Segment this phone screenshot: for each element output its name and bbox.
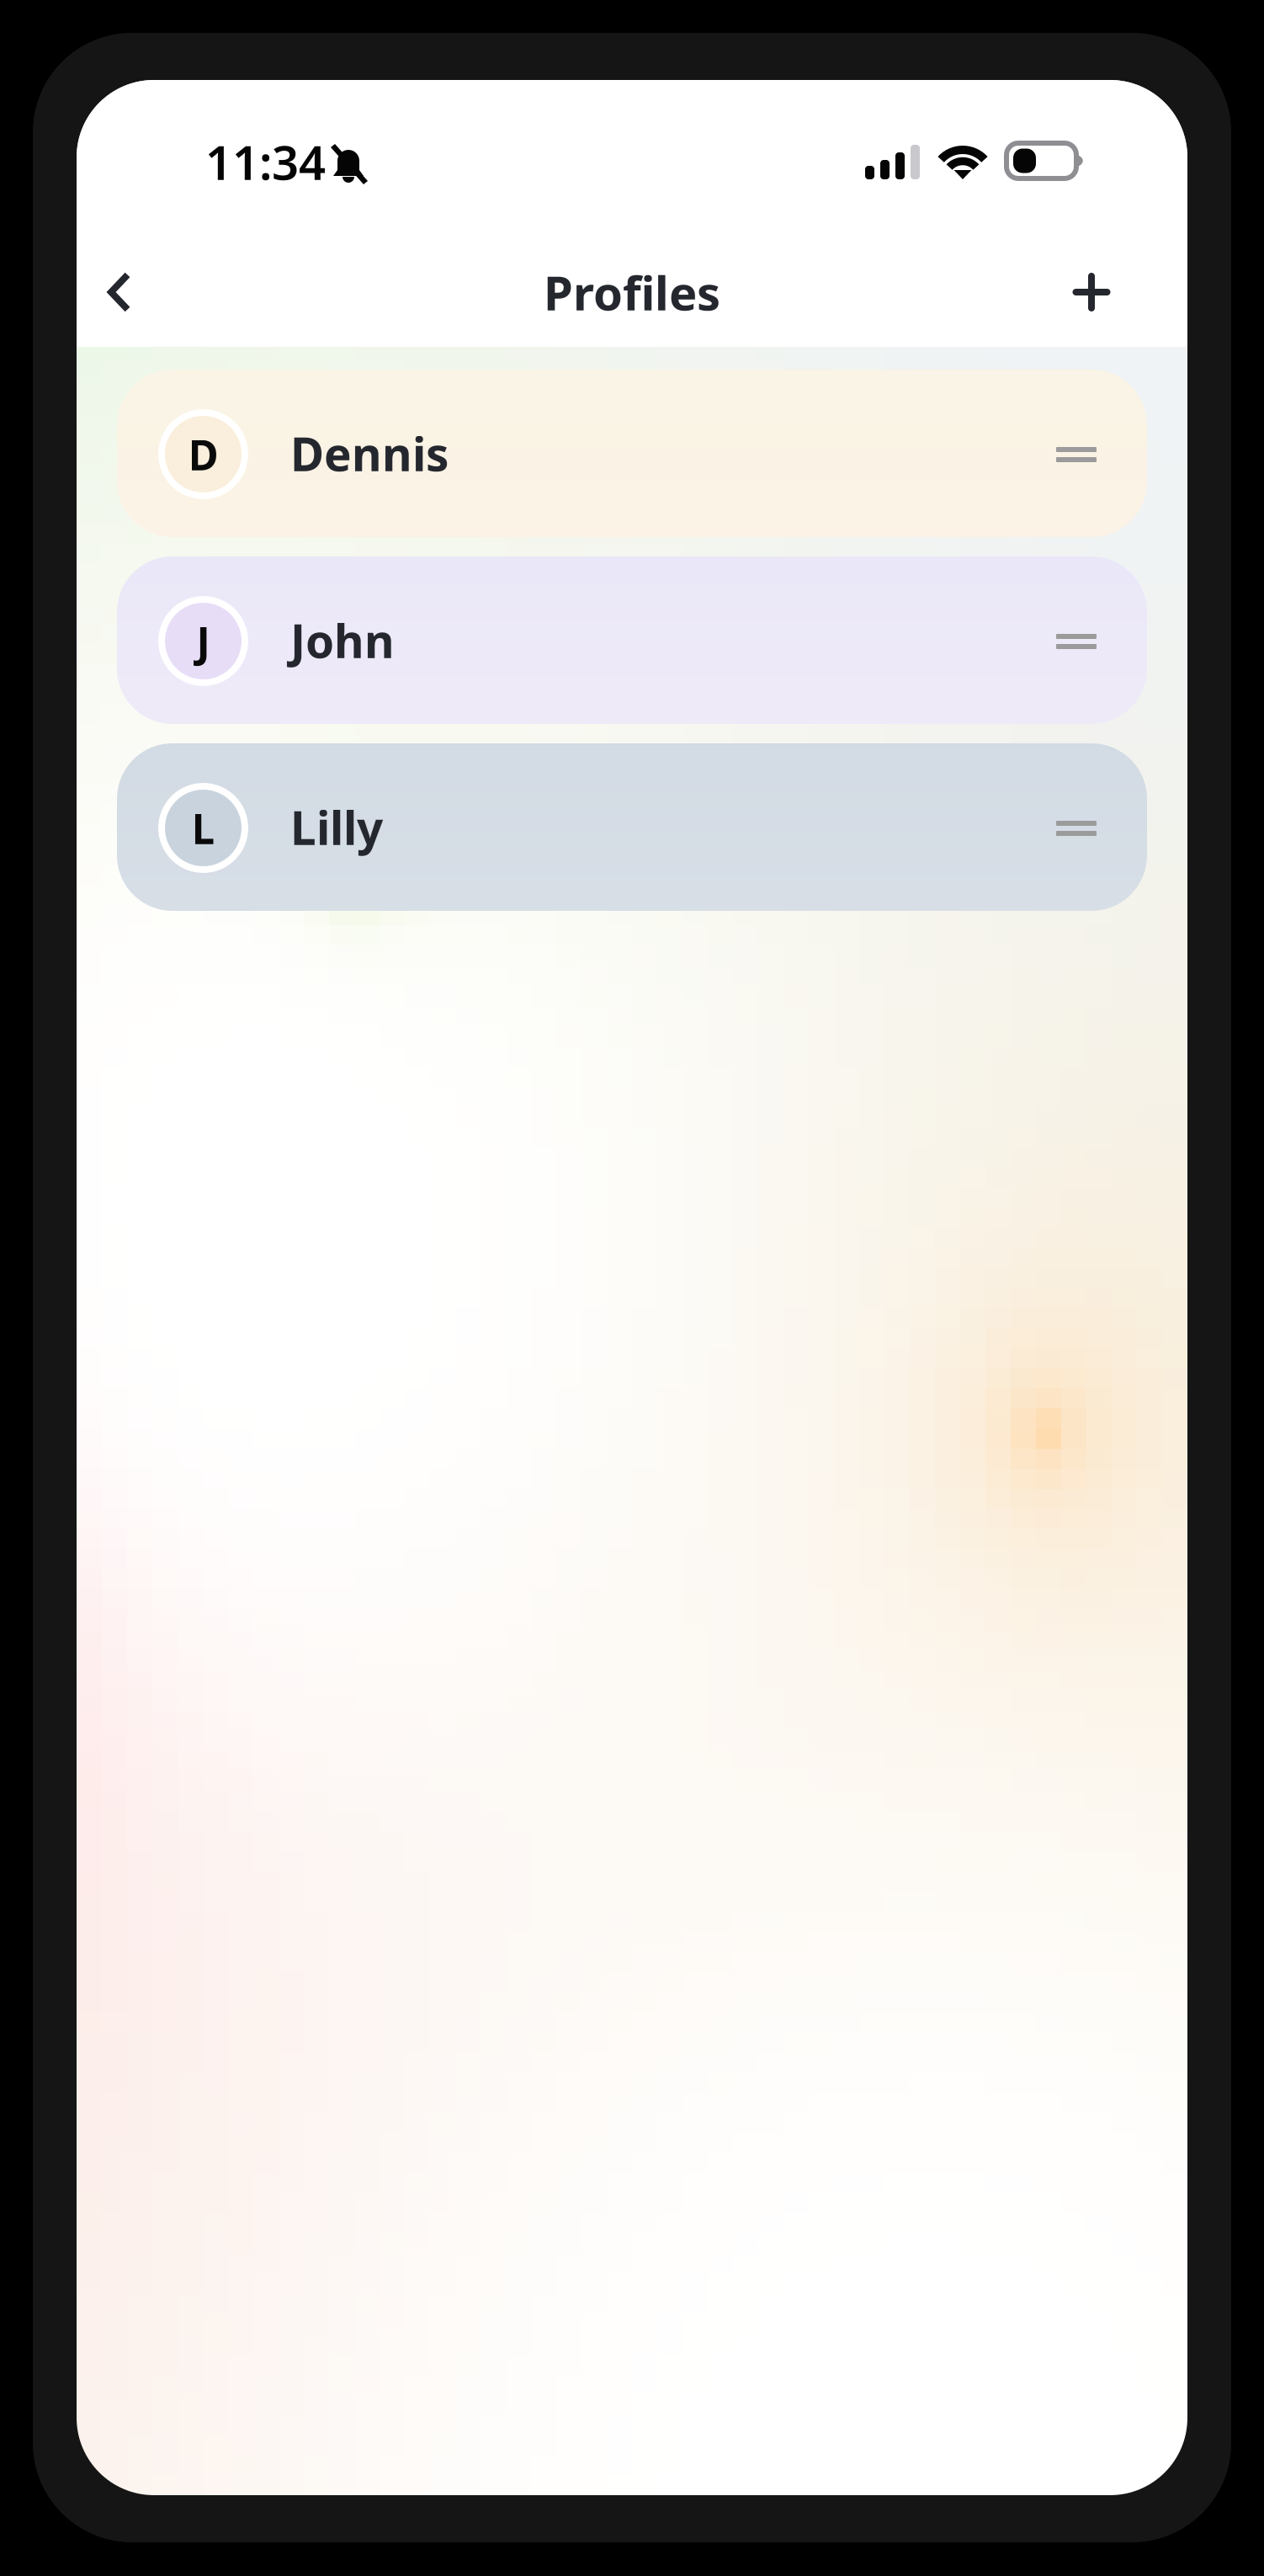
button[interactable]: D [117, 370, 1147, 537]
staticText: Lilly [290, 797, 383, 858]
staticText: Profiles [544, 261, 720, 323]
staticText: L [191, 800, 215, 855]
staticText: 11:34 [205, 130, 326, 193]
button[interactable]: L [117, 743, 1147, 911]
button[interactable]: Add profile [1045, 246, 1138, 338]
button[interactable]: Back [73, 246, 166, 338]
button[interactable]: J [117, 556, 1147, 724]
staticText: John [290, 610, 395, 671]
staticText: Dennis [290, 423, 449, 484]
staticText: J [197, 613, 210, 669]
staticText: D [188, 427, 218, 482]
